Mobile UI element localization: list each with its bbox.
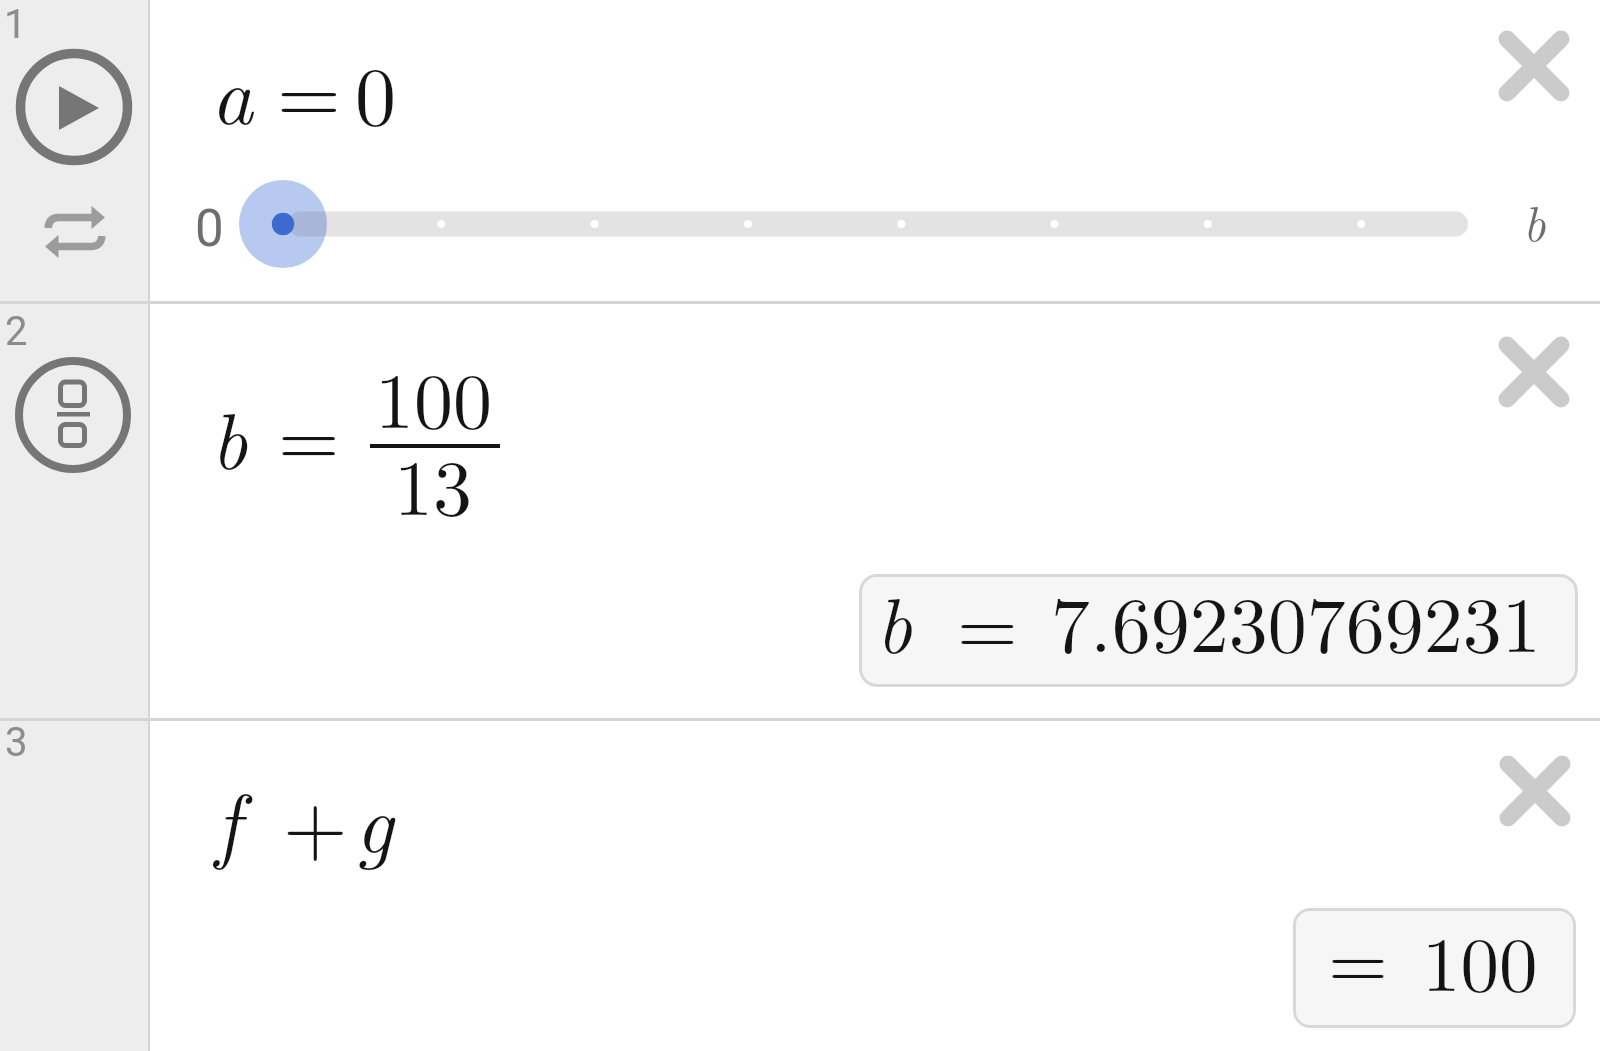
button[interactable] [15, 357, 131, 473]
staticText: 1 [4, 1, 27, 48]
staticText: = [1328, 901, 1388, 1010]
staticText: b [1523, 186, 1546, 255]
staticText: 0 [355, 33, 397, 149]
staticText: = [957, 566, 1018, 677]
staticText: b [211, 380, 248, 492]
staticText: a [211, 32, 253, 148]
staticText: = [277, 31, 341, 147]
button[interactable] [150, 0, 1600, 301]
button[interactable] [239, 180, 327, 268]
button[interactable] [859, 574, 1578, 687]
button[interactable] [1498, 336, 1570, 408]
button[interactable] [40, 200, 110, 262]
staticText: + [283, 760, 348, 878]
staticText: 2 [5, 308, 28, 355]
button[interactable] [1499, 755, 1571, 827]
button[interactable] [150, 304, 1600, 718]
staticText: f [215, 760, 241, 877]
staticText: 100 [375, 340, 493, 451]
staticText: g [355, 760, 394, 877]
button[interactable] [150, 721, 1600, 1051]
staticText: 3 [5, 719, 28, 766]
button[interactable] [1293, 908, 1576, 1028]
staticText: = [278, 377, 340, 489]
button[interactable] [17, 50, 131, 164]
staticText: b [876, 565, 912, 675]
staticText: 0 [195, 199, 224, 259]
staticText: 13 [394, 427, 473, 538]
staticText: 100 [1422, 904, 1538, 1013]
staticText: 7.69230769231 [1051, 564, 1541, 675]
button[interactable] [1498, 30, 1570, 102]
